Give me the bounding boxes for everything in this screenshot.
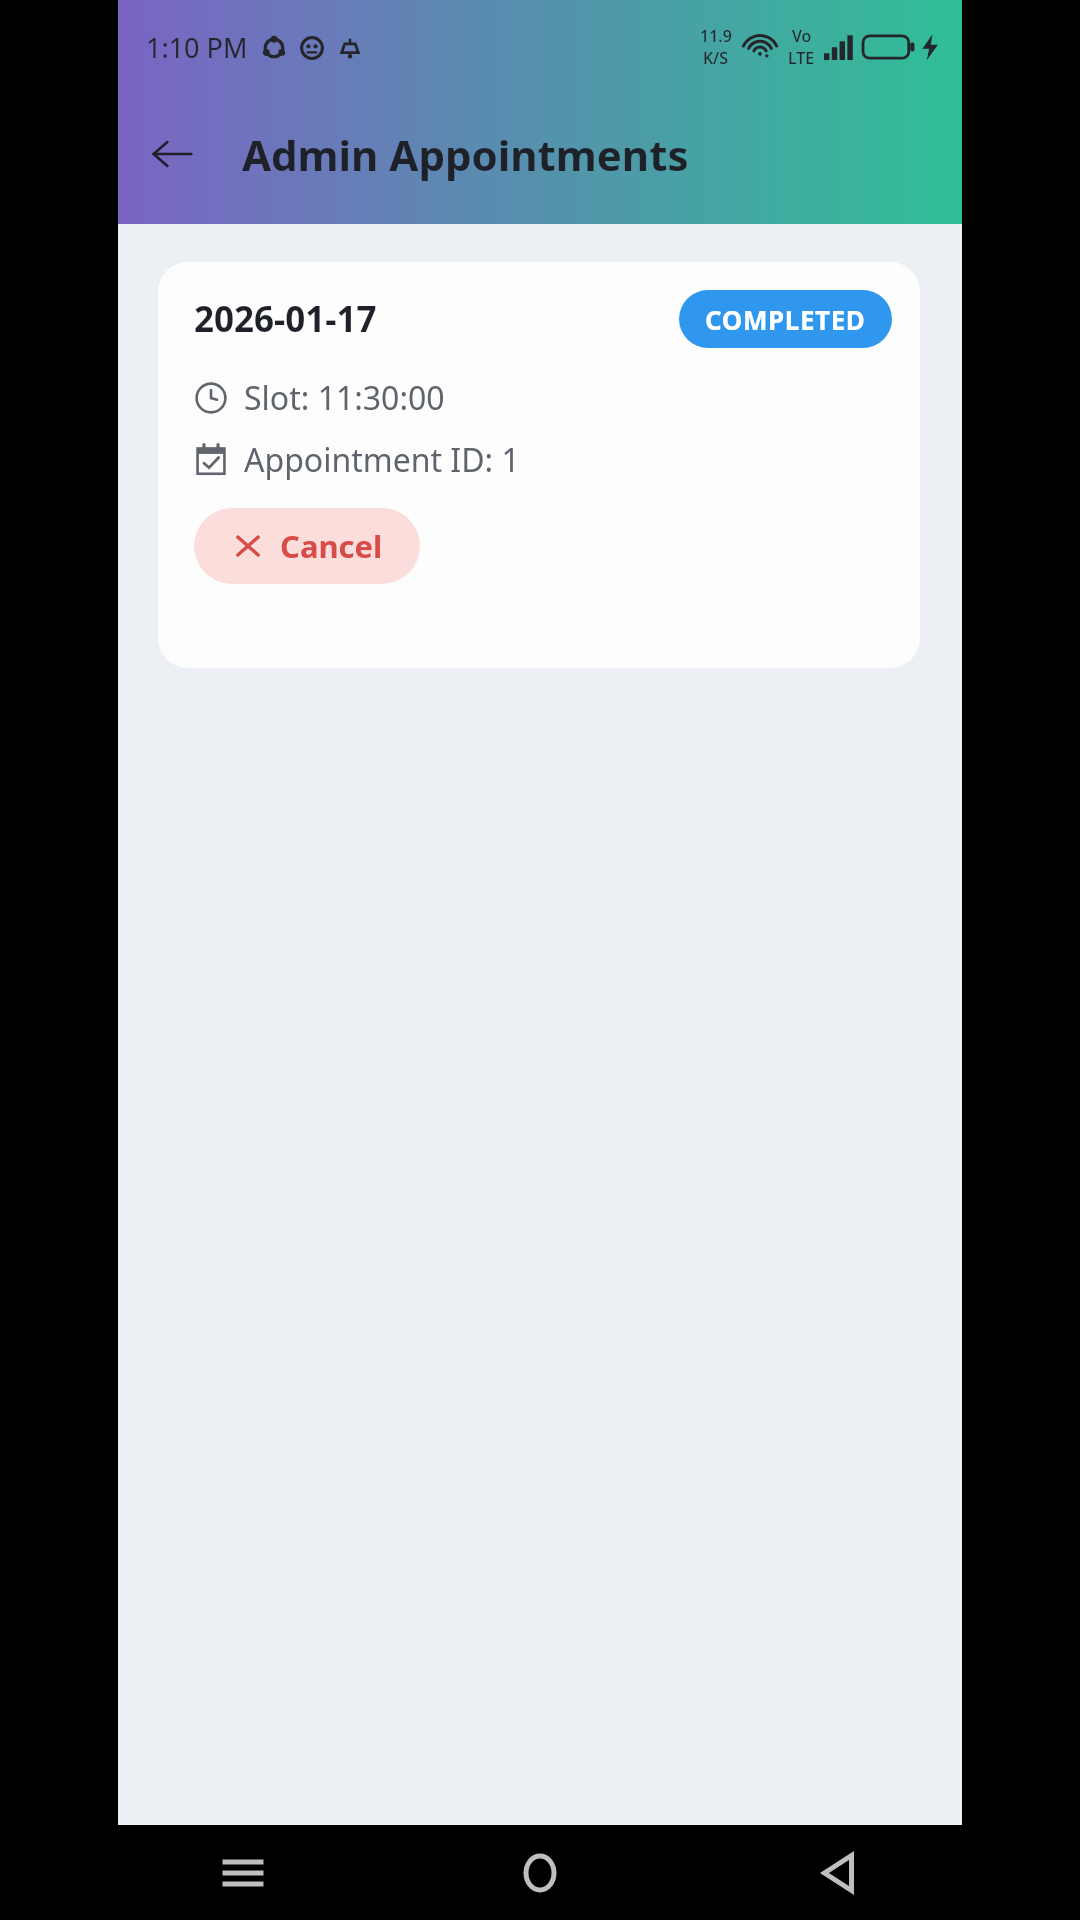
staticText: Cancel [280, 525, 383, 567]
button[interactable]: Recents [188, 1825, 298, 1920]
staticText: LTE [788, 47, 815, 69]
button[interactable]: Back [130, 112, 214, 196]
button[interactable]: Cancel [194, 508, 420, 584]
button[interactable]: 2026-01-17 [158, 262, 920, 668]
staticText: 1:10 PM [146, 29, 248, 66]
button[interactable]: COMPLETED [679, 290, 892, 348]
staticText: 11.9 [700, 25, 732, 47]
staticText: Admin Appointments [242, 126, 689, 183]
staticText: Vo [792, 25, 812, 47]
button[interactable]: Back [783, 1825, 893, 1920]
staticText: COMPLETED [705, 302, 866, 337]
staticText: 2026-01-17 [194, 295, 377, 343]
staticText: Appointment ID: 1 [244, 438, 520, 482]
button[interactable]: Home [485, 1825, 595, 1920]
staticText: Slot: 11:30:00 [244, 376, 445, 420]
staticText: K/S [703, 47, 729, 69]
